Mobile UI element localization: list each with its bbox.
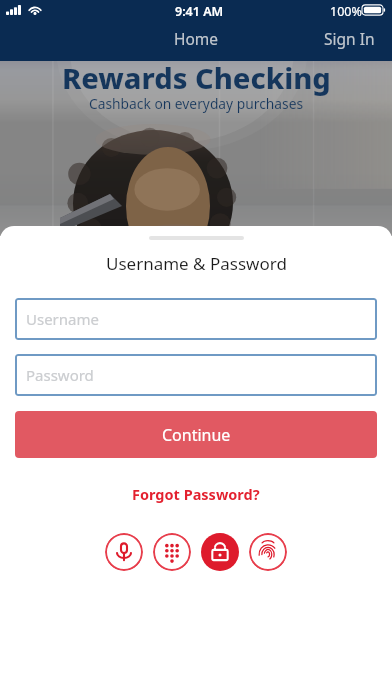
button[interactable]: Continue [15,411,377,458]
button[interactable]: Voice login [105,533,143,571]
button[interactable]: Sign In [310,23,392,54]
staticText: Forgot Password? [132,484,260,504]
button[interactable]: Keypad login [153,533,191,571]
button[interactable]: Fingerprint login [249,533,287,571]
staticText: 9:41 AM [175,3,224,20]
staticText: Username [26,309,99,329]
staticText: Continue [162,424,231,446]
staticText: Sign In [324,28,375,49]
button[interactable]: Username [15,298,377,340]
button[interactable]: Forgot Password? [124,481,268,507]
staticText: Home [174,28,219,49]
button[interactable]: Password [15,354,377,396]
staticText: Rewards Checking [62,58,331,97]
staticText: Password [26,365,94,385]
button[interactable]: Home [160,23,233,54]
staticText: 100% [330,3,362,20]
button[interactable]: Password login [201,533,239,571]
staticText: Cashback on everyday purchases [89,94,304,113]
staticText: Username & Password [106,252,287,275]
